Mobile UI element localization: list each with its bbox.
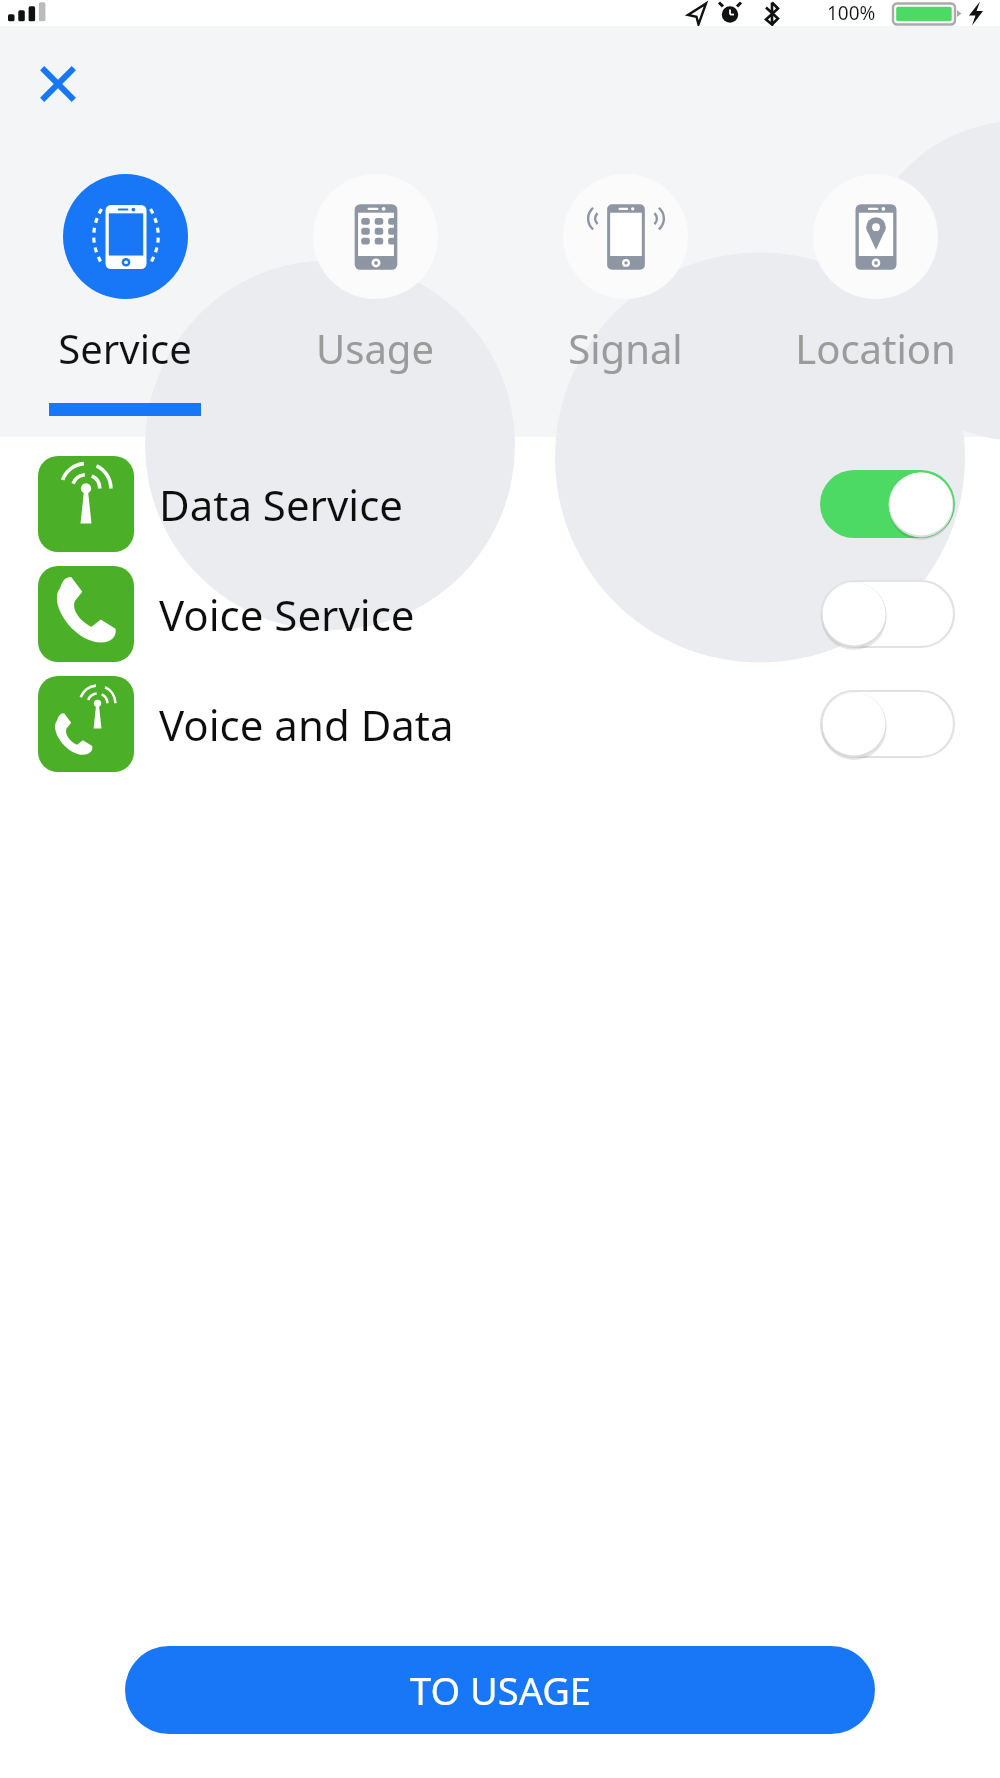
button[interactable]: TO USAGE (125, 1646, 875, 1734)
staticText: Service (58, 321, 192, 375)
staticText: Voice Service (159, 586, 415, 643)
staticText: Location (795, 321, 956, 375)
button[interactable]: Voice Service (0, 566, 1000, 662)
button[interactable]: Usage (250, 174, 500, 437)
button[interactable]: Service (0, 174, 250, 437)
button[interactable]: Off (820, 580, 955, 648)
button[interactable]: Signal (500, 174, 750, 437)
staticText: Usage (316, 321, 434, 375)
button[interactable]: Data Service (0, 456, 1000, 552)
staticText: Voice and Data (159, 696, 454, 753)
button[interactable]: Voice and Data (0, 676, 1000, 772)
button[interactable]: Location (750, 174, 1000, 437)
staticText: 100% (827, 0, 876, 26)
button[interactable]: On (820, 470, 955, 538)
button[interactable]: Off (820, 690, 955, 758)
staticText: Data Service (159, 476, 403, 533)
button[interactable]: Close (26, 52, 90, 116)
staticText: TO USAGE (410, 1664, 591, 1716)
staticText: Signal (568, 321, 683, 375)
